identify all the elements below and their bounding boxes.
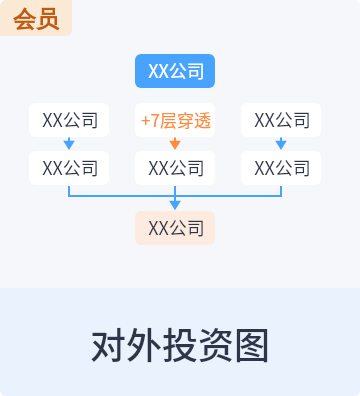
staticText: XX公司 (42, 106, 99, 132)
button[interactable]: 会员 (0, 0, 72, 36)
button[interactable]: XX公司 (135, 211, 215, 245)
staticText: XX公司 (42, 154, 99, 180)
button[interactable]: XX公司 (29, 103, 109, 137)
button[interactable]: XX公司 (241, 151, 321, 185)
button[interactable]: XX公司 (29, 151, 109, 185)
staticText: XX公司 (254, 154, 311, 180)
button[interactable]: +7层穿透 (135, 103, 215, 137)
staticText: 对外投资图 (90, 317, 271, 369)
staticText: XX公司 (254, 106, 311, 132)
staticText: XX公司 (148, 214, 205, 240)
button[interactable]: XX公司 (135, 54, 215, 88)
staticText: XX公司 (148, 154, 205, 180)
staticText: 会员 (13, 5, 59, 34)
staticText: XX公司 (148, 57, 205, 83)
button[interactable]: XX公司 (135, 151, 215, 185)
button[interactable]: XX公司 (241, 103, 321, 137)
button[interactable]: 对外投资图 (0, 288, 360, 396)
staticText: +7层穿透 (141, 107, 211, 132)
